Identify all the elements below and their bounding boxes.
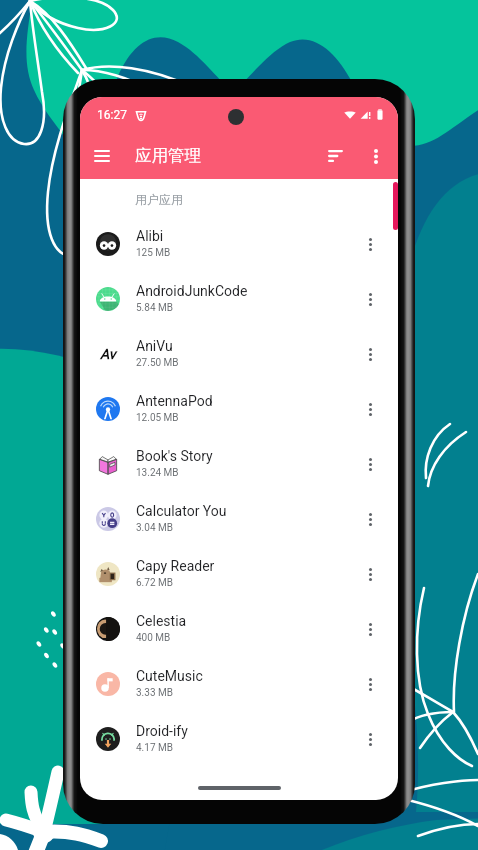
button[interactable]: More options xyxy=(351,720,389,758)
button[interactable]: Celestia xyxy=(80,601,398,656)
staticText: Droid-ify xyxy=(136,723,188,739)
staticText: 12.05 MB xyxy=(136,412,179,424)
staticText: Capy Reader xyxy=(136,558,215,574)
button[interactable]: More options xyxy=(351,665,389,703)
staticText: CuteMusic xyxy=(136,668,203,684)
button[interactable]: Av xyxy=(80,326,398,381)
button[interactable]: AntennaPod xyxy=(80,381,398,436)
button[interactable]: Alibi xyxy=(80,216,398,271)
button[interactable]: More options xyxy=(351,390,389,428)
button[interactable]: More options xyxy=(351,335,389,373)
staticText: Book's Story xyxy=(136,448,213,464)
staticText: 4.17 MB xyxy=(136,742,173,754)
staticText: Av xyxy=(100,346,116,362)
button[interactable]: Sort xyxy=(313,134,357,178)
button[interactable]: More options xyxy=(351,225,389,263)
button[interactable]: More options xyxy=(357,137,395,175)
staticText: 27.50 MB xyxy=(136,357,179,369)
staticText: 应用管理 xyxy=(135,145,201,166)
button[interactable]: CuteMusic xyxy=(80,656,398,711)
staticText: Celestia xyxy=(136,613,187,629)
button[interactable]: AndroidJunkCode xyxy=(80,271,398,326)
staticText: 3.33 MB xyxy=(136,687,173,699)
button[interactable]: More options xyxy=(351,445,389,483)
staticText: AniVu xyxy=(136,338,173,354)
staticText: 5.84 MB xyxy=(136,302,173,314)
staticText: AndroidJunkCode xyxy=(136,283,248,299)
button[interactable]: Droid-ify xyxy=(80,711,398,766)
staticText: 400 MB xyxy=(136,632,171,644)
button[interactable]: Menu xyxy=(80,134,124,178)
button[interactable]: Book's Story xyxy=(80,436,398,491)
staticText: 16:27 xyxy=(97,108,127,122)
staticText: 3.04 MB xyxy=(136,522,173,534)
staticText: Calculator You xyxy=(136,503,227,519)
button[interactable]: More options xyxy=(351,610,389,648)
button[interactable]: More options xyxy=(351,555,389,593)
staticText: 用户应用 xyxy=(135,192,183,207)
staticText: 13.24 MB xyxy=(136,467,179,479)
staticText: 125 MB xyxy=(136,247,171,259)
button[interactable]: More options xyxy=(351,500,389,538)
button[interactable]: Capy Reader xyxy=(80,546,398,601)
staticText: Alibi xyxy=(136,228,164,244)
staticText: AntennaPod xyxy=(136,393,213,409)
button[interactable]: Calculator You xyxy=(80,491,398,546)
staticText: 6.72 MB xyxy=(136,577,173,589)
button[interactable]: More options xyxy=(351,280,389,318)
